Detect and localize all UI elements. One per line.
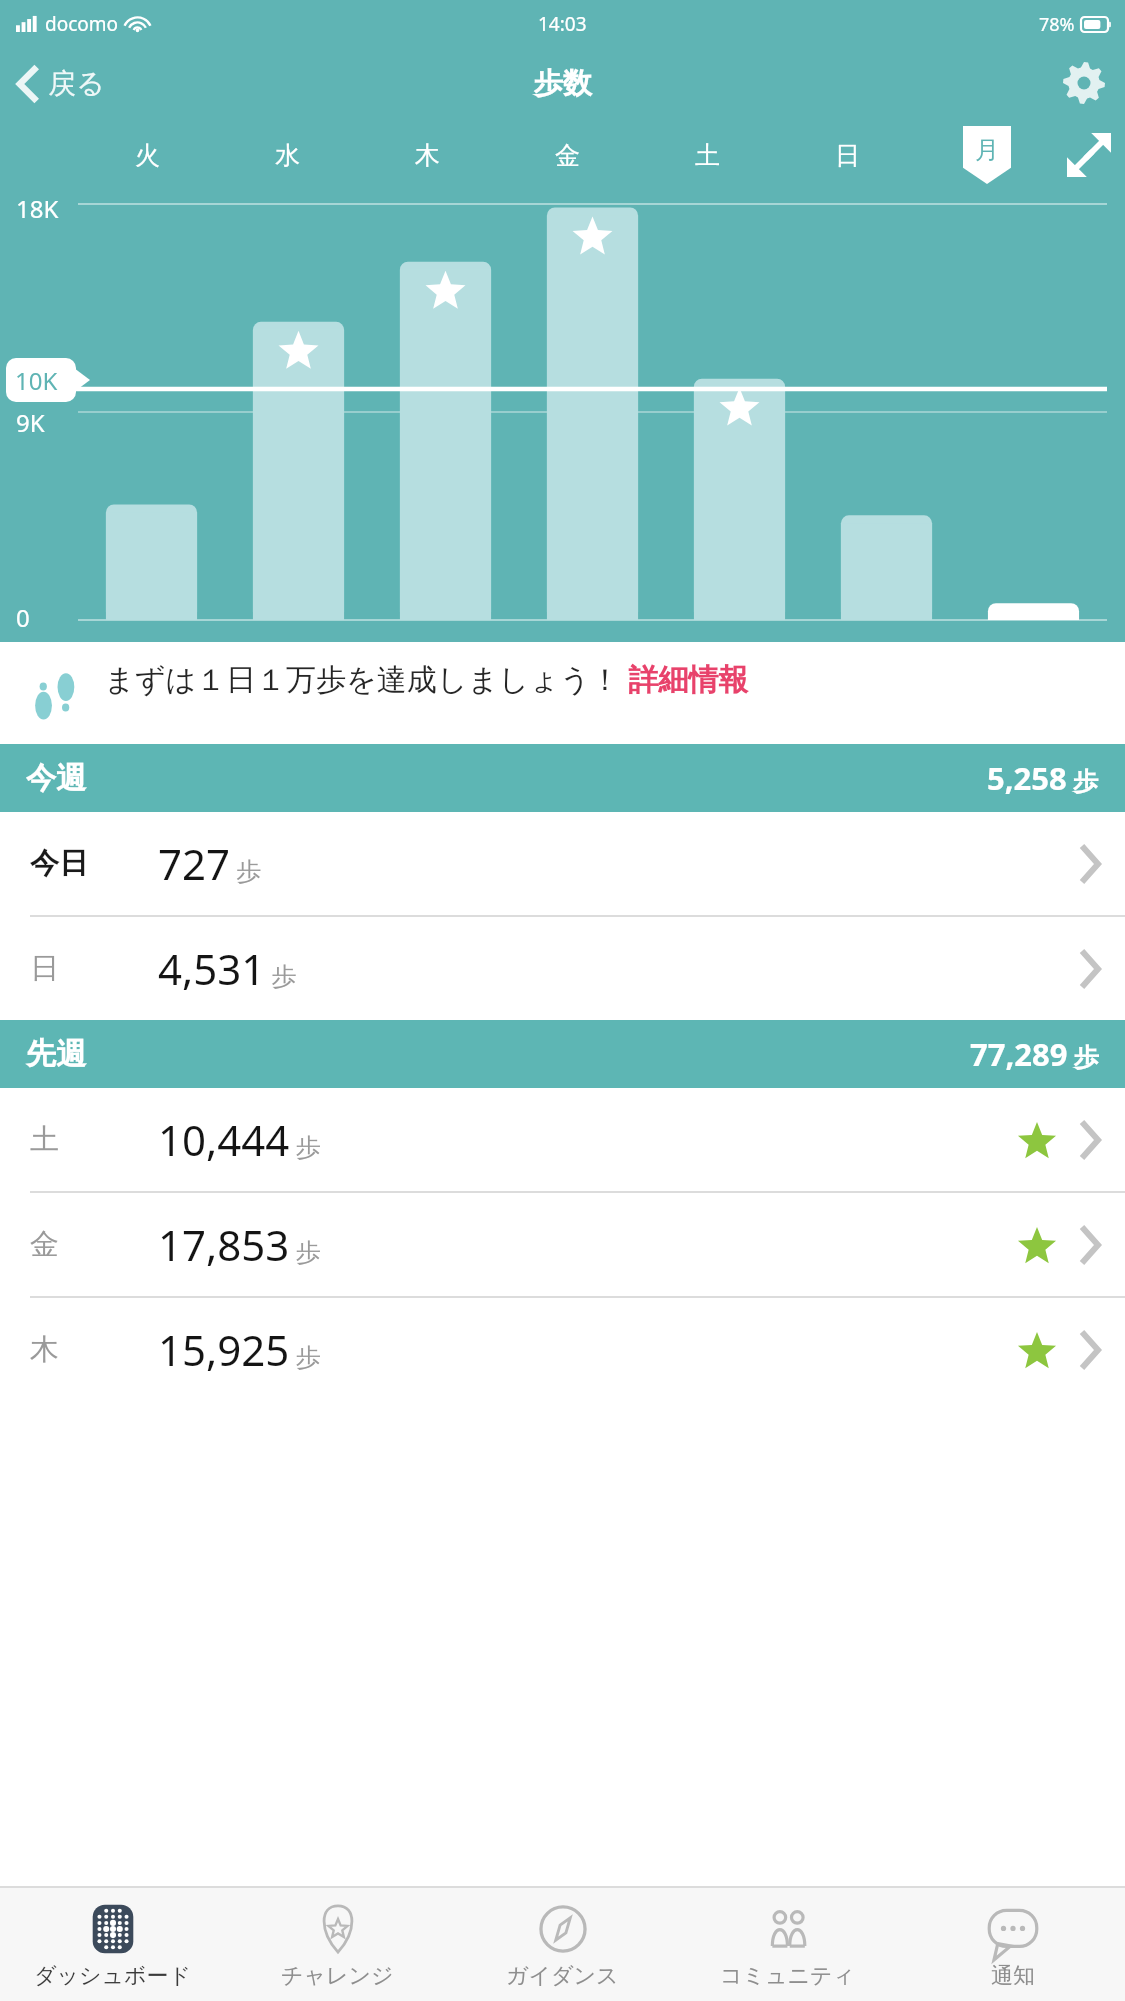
staticText: 78% — [1039, 12, 1075, 37]
staticText: 金 — [555, 140, 580, 171]
button[interactable]: Settings — [1043, 54, 1125, 112]
staticText: 727 歩 — [158, 835, 262, 892]
button[interactable]: チャレンジ — [225, 1888, 450, 2001]
staticText: 77,289 歩 — [970, 1033, 1099, 1075]
button[interactable]: 金 — [0, 1193, 1125, 1298]
staticText: 日 — [30, 950, 59, 987]
button[interactable]: Expand — [1063, 129, 1115, 181]
staticText: まずは１日１万歩を達成しましょう！ 詳細情報 — [104, 658, 749, 699]
staticText: 土 — [695, 140, 720, 171]
staticText: 10,444 歩 — [158, 1111, 321, 1168]
staticText: 日 — [835, 140, 860, 171]
staticText: 4,531 歩 — [158, 940, 297, 997]
button[interactable]: まずは１日１万歩を達成しましょう！ 詳細情報 — [0, 642, 1125, 744]
button[interactable]: 土 — [0, 1088, 1125, 1193]
button[interactable]: 木 — [0, 1298, 1125, 1401]
staticText: 木 — [30, 1331, 59, 1368]
staticText: 水 — [275, 140, 300, 171]
staticText: 9K — [16, 406, 45, 439]
staticText: 今週 — [26, 759, 86, 797]
staticText: 今日 — [30, 845, 88, 882]
button[interactable]: コミュニティ — [675, 1888, 900, 2001]
staticText: 月 — [975, 135, 999, 165]
staticText: 0 — [16, 601, 30, 634]
staticText: 土 — [30, 1121, 59, 1158]
button[interactable]: ガイダンス — [450, 1888, 675, 2001]
staticText: 18K — [16, 192, 59, 225]
staticText: 木 — [415, 140, 440, 171]
staticText: docomo — [45, 11, 119, 37]
staticText: 歩数 — [534, 65, 592, 102]
staticText: ダッシュボード — [34, 1962, 192, 1990]
button[interactable]: 日 — [0, 917, 1125, 1020]
staticText: 17,853 歩 — [158, 1216, 321, 1273]
button[interactable]: 戻る — [0, 60, 121, 107]
staticText: 10K — [15, 364, 58, 397]
button[interactable]: 通知 — [900, 1888, 1125, 2001]
staticText: 金 — [30, 1226, 59, 1263]
staticText: 15,925 歩 — [158, 1321, 321, 1378]
button[interactable]: 今日 — [0, 812, 1125, 917]
staticText: 火 — [135, 140, 160, 171]
button[interactable]: ダッシュボード — [0, 1888, 225, 2001]
staticText: 先週 — [26, 1035, 86, 1073]
staticText: 5,258 歩 — [987, 757, 1099, 799]
staticText: チャレンジ — [281, 1962, 394, 1990]
staticText: 14:03 — [538, 11, 587, 37]
staticText: ガイダンス — [506, 1962, 619, 1990]
staticText: 通知 — [991, 1962, 1035, 1990]
staticText: 戻る — [48, 66, 105, 101]
button[interactable]: 月 — [963, 126, 1011, 184]
staticText: コミュニティ — [720, 1962, 856, 1990]
